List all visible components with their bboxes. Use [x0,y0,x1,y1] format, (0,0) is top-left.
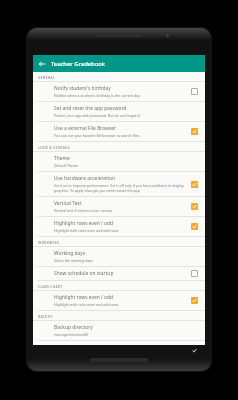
button[interactable]: Navigate up [37,59,47,69]
staticText: Highlight rows even / odd [54,220,114,227]
staticText: Highlight with color even and odd rows [54,302,119,307]
staticText: LOOK & STORAGE [38,145,70,150]
staticText: Set it on to improve performance. Set it… [54,183,187,193]
staticText: GENERAL [38,75,55,80]
staticText: BACKUP [38,314,53,319]
staticText: Highlight rows even / odd [54,294,114,301]
staticText: Vertical text if column is too narrow [54,208,113,213]
staticText: Show schedule on startup [54,270,114,277]
staticText: Notifies when a student's birthday is th… [54,93,140,98]
staticText: Backup directory [54,324,93,331]
staticText: Vertical Text [54,200,82,207]
button[interactable]: Set and reset the app password [33,102,205,121]
button[interactable]: Vertical Text [33,197,205,216]
button[interactable]: Show schedule on startup [33,267,205,280]
staticText: WORKWEEK [38,240,60,245]
staticText: Working days [54,250,86,257]
staticText: Protect your app with password. But do n… [54,113,141,118]
staticText: Theme [54,155,70,162]
staticText: Highlight with color even and odd rows [54,228,119,233]
staticText: Use hardware acceleration [54,175,116,182]
staticText: /storage/emulated/0 [54,332,89,337]
staticText: You can use your favorite file browser t… [54,133,140,138]
button[interactable]: Use hardware acceleration [33,172,205,196]
button[interactable]: Highlight rows even / odd [33,291,205,310]
button[interactable]: Use a external File Browser [33,122,205,141]
button[interactable]: Highlight rows even / odd [33,217,205,236]
button[interactable]: Working days [33,247,205,266]
staticText: Teacher Gradebook [51,60,105,68]
staticText: CLASS CHART [38,284,63,289]
button[interactable]: Theme [33,152,205,171]
staticText: Notify student's birthday [54,85,111,92]
staticText: Set and reset the app password [54,105,127,112]
staticText: Use a external File Browser [54,125,117,132]
button[interactable]: Notify student's birthday [33,82,205,101]
staticText: Select the working days [54,258,93,263]
staticText: Default Theme [54,163,79,168]
button[interactable]: Backup directory [33,321,205,340]
